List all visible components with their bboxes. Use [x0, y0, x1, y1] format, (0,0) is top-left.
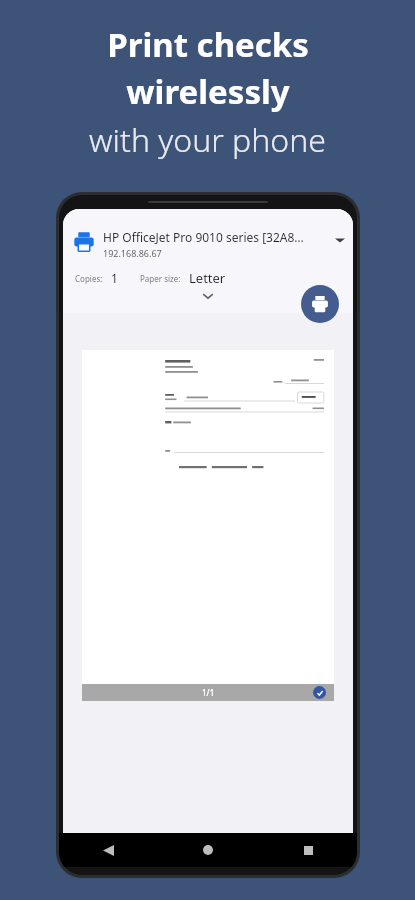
- staticText: with your phone: [89, 118, 326, 162]
- staticText: HP OfficeJet Pro 9010 series [32A8…: [103, 229, 304, 245]
- button[interactable]: HP OfficeJet Pro 9010 series [32A8…: [73, 229, 345, 259]
- staticText: 1: [111, 270, 118, 286]
- button[interactable]: Recent apps: [293, 835, 323, 865]
- staticText: wirelessly: [126, 69, 290, 114]
- staticText: Print checks: [107, 22, 309, 67]
- staticText: Letter: [189, 269, 226, 287]
- staticText: 1/1: [202, 687, 215, 698]
- button[interactable]: Print: [301, 285, 339, 323]
- other: Select printer: [335, 235, 345, 245]
- staticText: Paper size:: [140, 273, 181, 284]
- staticText: 192.168.86.67: [103, 247, 162, 259]
- button[interactable]: Expand options: [195, 283, 221, 309]
- staticText: Copies:: [75, 273, 103, 284]
- button[interactable]: Page selected: [313, 686, 326, 699]
- button[interactable]: Back: [93, 835, 123, 865]
- button[interactable]: Home: [193, 835, 223, 865]
